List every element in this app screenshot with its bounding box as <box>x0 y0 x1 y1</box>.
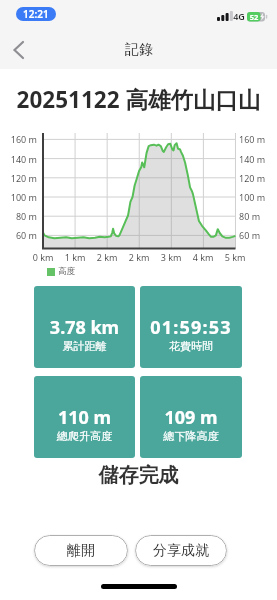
staticText: 高度 <box>58 266 88 277</box>
staticText: 120 m <box>0 172 37 184</box>
staticText: 109 m <box>140 405 242 430</box>
staticText: 3.78 km <box>34 315 135 340</box>
staticText: 110 m <box>34 405 135 430</box>
staticText: 3 km <box>155 251 187 263</box>
staticText: 12:21 <box>23 7 49 21</box>
button[interactable] <box>13 41 25 59</box>
staticText: 120 m <box>239 172 277 184</box>
staticText: 160 m <box>0 133 37 145</box>
staticText: 離開 <box>67 542 95 560</box>
button[interactable]: 記錄 <box>0 36 277 64</box>
staticText: 60 m <box>0 229 37 241</box>
button[interactable] <box>34 376 135 458</box>
button[interactable] <box>34 286 135 368</box>
staticText: 1 km <box>59 251 91 263</box>
staticText: 80 m <box>239 210 277 222</box>
staticText: 160 m <box>239 133 277 145</box>
staticText: 累計距離 <box>34 339 135 353</box>
staticText: 4 km <box>187 251 219 263</box>
staticText: 52 <box>247 12 261 22</box>
staticText: 140 m <box>239 153 277 165</box>
staticText: 80 m <box>0 210 37 222</box>
staticText: 0 km <box>27 251 59 263</box>
staticText: 140 m <box>0 153 37 165</box>
staticText: 儲存完成 <box>0 463 277 488</box>
staticText: 總爬升高度 <box>34 429 135 443</box>
staticText: 2 km <box>123 251 155 263</box>
staticText: 2 km <box>91 251 123 263</box>
staticText: 花費時間 <box>140 339 242 353</box>
staticText: 總下降高度 <box>140 429 242 443</box>
staticText: 20251122 高雄竹山口山 <box>0 84 277 115</box>
button[interactable] <box>140 376 242 458</box>
button[interactable]: 分享成就 <box>135 535 227 566</box>
staticText: 記錄 <box>125 41 153 59</box>
staticText: 100 m <box>0 191 37 203</box>
staticText: 01:59:53 <box>140 315 242 340</box>
staticText: 60 m <box>239 229 277 241</box>
staticText: 5 km <box>219 251 251 263</box>
staticText: 分享成就 <box>153 542 209 560</box>
button[interactable]: 離開 <box>34 535 128 566</box>
staticText: 100 m <box>239 191 277 203</box>
button[interactable] <box>140 286 242 368</box>
staticText: 4G <box>230 10 248 22</box>
